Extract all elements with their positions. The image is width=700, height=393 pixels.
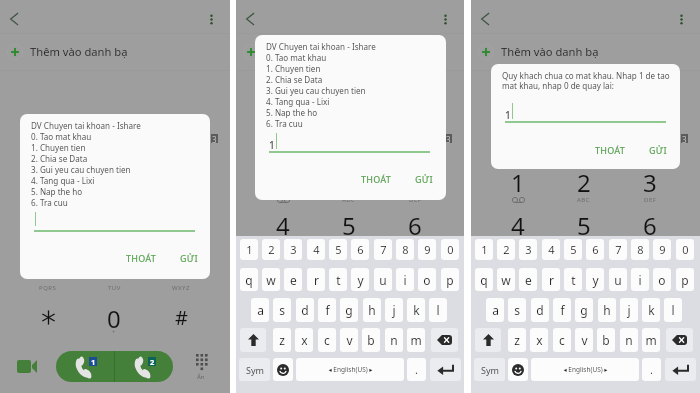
button[interactable]: o <box>653 268 671 291</box>
button[interactable]: g <box>340 298 358 322</box>
button[interactable]: v <box>575 328 593 352</box>
button[interactable]: w <box>497 268 515 291</box>
button[interactable]: 3 <box>284 239 302 260</box>
button[interactable]: More options <box>199 7 223 31</box>
button[interactable]: Sym <box>474 358 505 381</box>
button[interactable]: l <box>664 298 682 322</box>
button[interactable]: 5 <box>558 209 610 239</box>
button[interactable]: w <box>262 268 280 291</box>
button[interactable]: GỬI <box>649 144 667 156</box>
button[interactable]: s <box>273 298 291 322</box>
button[interactable]: j <box>385 298 403 322</box>
button[interactable]: q <box>475 268 493 291</box>
button[interactable]: n <box>385 328 403 352</box>
button[interactable]: 7 <box>374 239 392 260</box>
button[interactable]: 7 <box>609 239 627 260</box>
button[interactable]: x <box>530 328 548 352</box>
button[interactable]: 1 <box>475 239 493 260</box>
button[interactable]: Shift <box>475 328 501 352</box>
button[interactable]: 6 <box>624 209 676 239</box>
button[interactable]: g <box>575 298 593 322</box>
button[interactable]: Back <box>2 7 26 31</box>
button[interactable]: ◂ English(US) ▸ <box>296 358 404 381</box>
button[interactable]: k <box>407 298 425 322</box>
button[interactable]: 4 <box>542 239 560 260</box>
button[interactable]: Thêm vào danh bạ <box>0 34 230 70</box>
button[interactable]: ◂ English(US) ▸ <box>531 358 639 381</box>
button[interactable]: 9 <box>418 239 436 260</box>
button[interactable]: h <box>598 298 616 322</box>
button[interactable]: 0 <box>441 239 459 260</box>
button[interactable]: f <box>553 298 571 322</box>
button[interactable]: . <box>407 358 426 381</box>
button[interactable]: f <box>318 298 336 322</box>
button[interactable]: . <box>642 358 661 381</box>
button[interactable]: m <box>407 328 425 352</box>
button[interactable]: y <box>586 268 604 291</box>
button[interactable]: l <box>429 298 447 322</box>
button[interactable]: p <box>676 268 694 291</box>
button[interactable]: p <box>441 268 459 291</box>
button[interactable]: 1 <box>240 239 258 260</box>
button[interactable]: 2 <box>558 166 610 196</box>
button[interactable]: THOÁT <box>126 252 156 264</box>
button[interactable]: 4 <box>257 209 309 239</box>
button[interactable]: e <box>284 268 302 291</box>
button[interactable]: y <box>351 268 369 291</box>
button[interactable]: r <box>307 268 325 291</box>
button[interactable]: h <box>363 298 381 322</box>
button[interactable]: 6 <box>586 239 604 260</box>
button[interactable]: Pound <box>155 303 207 331</box>
button[interactable]: 2 <box>497 239 515 260</box>
button[interactable]: 9 <box>653 239 671 260</box>
button[interactable]: Call with SIM 2 <box>115 351 173 382</box>
button[interactable]: e <box>519 268 537 291</box>
button[interactable]: b <box>597 328 615 352</box>
button[interactable]: 0 <box>676 239 694 260</box>
button[interactable]: Enter <box>665 358 696 381</box>
button[interactable]: THOÁT <box>595 144 625 156</box>
button[interactable]: z <box>508 328 526 352</box>
button[interactable]: Enter <box>430 358 461 381</box>
button[interactable]: 5 <box>329 239 347 260</box>
button[interactable]: b <box>362 328 380 352</box>
button[interactable]: 3 <box>519 239 537 260</box>
button[interactable]: i <box>631 268 649 291</box>
button[interactable]: Backspace <box>666 328 693 352</box>
button[interactable]: THOÁT <box>361 173 391 185</box>
button[interactable]: Star <box>22 303 74 331</box>
button[interactable]: n <box>620 328 638 352</box>
button[interactable]: c <box>553 328 571 352</box>
button[interactable]: Hide keypad <box>188 348 215 384</box>
button[interactable]: 6 <box>389 209 441 239</box>
button[interactable]: 4 <box>307 239 325 260</box>
button[interactable]: c <box>318 328 336 352</box>
button[interactable]: Back <box>473 7 497 31</box>
button[interactable]: Backspace <box>431 328 458 352</box>
button[interactable]: Thêm vào danh bạ <box>236 34 464 70</box>
button[interactable]: d <box>296 298 314 322</box>
button[interactable]: Shift <box>240 328 266 352</box>
button[interactable]: More options <box>433 7 457 31</box>
button[interactable]: o <box>418 268 436 291</box>
button[interactable]: a <box>486 298 504 322</box>
button[interactable]: Back <box>238 7 262 31</box>
button[interactable]: m <box>642 328 660 352</box>
button[interactable]: 5 <box>323 209 375 239</box>
button[interactable]: s <box>508 298 526 322</box>
button[interactable]: k <box>642 298 660 322</box>
button[interactable]: u <box>374 268 392 291</box>
button[interactable]: v <box>340 328 358 352</box>
button[interactable]: j <box>620 298 638 322</box>
button[interactable]: x <box>295 328 313 352</box>
button[interactable]: 4 <box>492 209 544 239</box>
button[interactable]: Video call <box>14 354 40 378</box>
button[interactable]: Emoji <box>273 358 293 381</box>
button[interactable]: q <box>240 268 258 291</box>
button[interactable]: 8 <box>631 239 649 260</box>
button[interactable]: Sym <box>239 358 270 381</box>
button[interactable]: 8 <box>396 239 414 260</box>
button[interactable]: z <box>273 328 291 352</box>
button[interactable]: 1 <box>492 166 544 196</box>
button[interactable]: More options <box>669 7 693 31</box>
